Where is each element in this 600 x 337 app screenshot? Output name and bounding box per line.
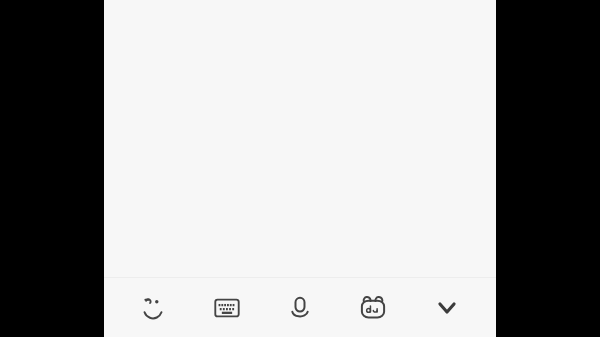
button[interactable]: Collapse [423,284,471,332]
button[interactable]: Assistant [349,284,397,332]
button[interactable]: Voice input [276,284,324,332]
button[interactable]: Keyboard [203,284,251,332]
button[interactable]: Emoji [129,284,177,332]
